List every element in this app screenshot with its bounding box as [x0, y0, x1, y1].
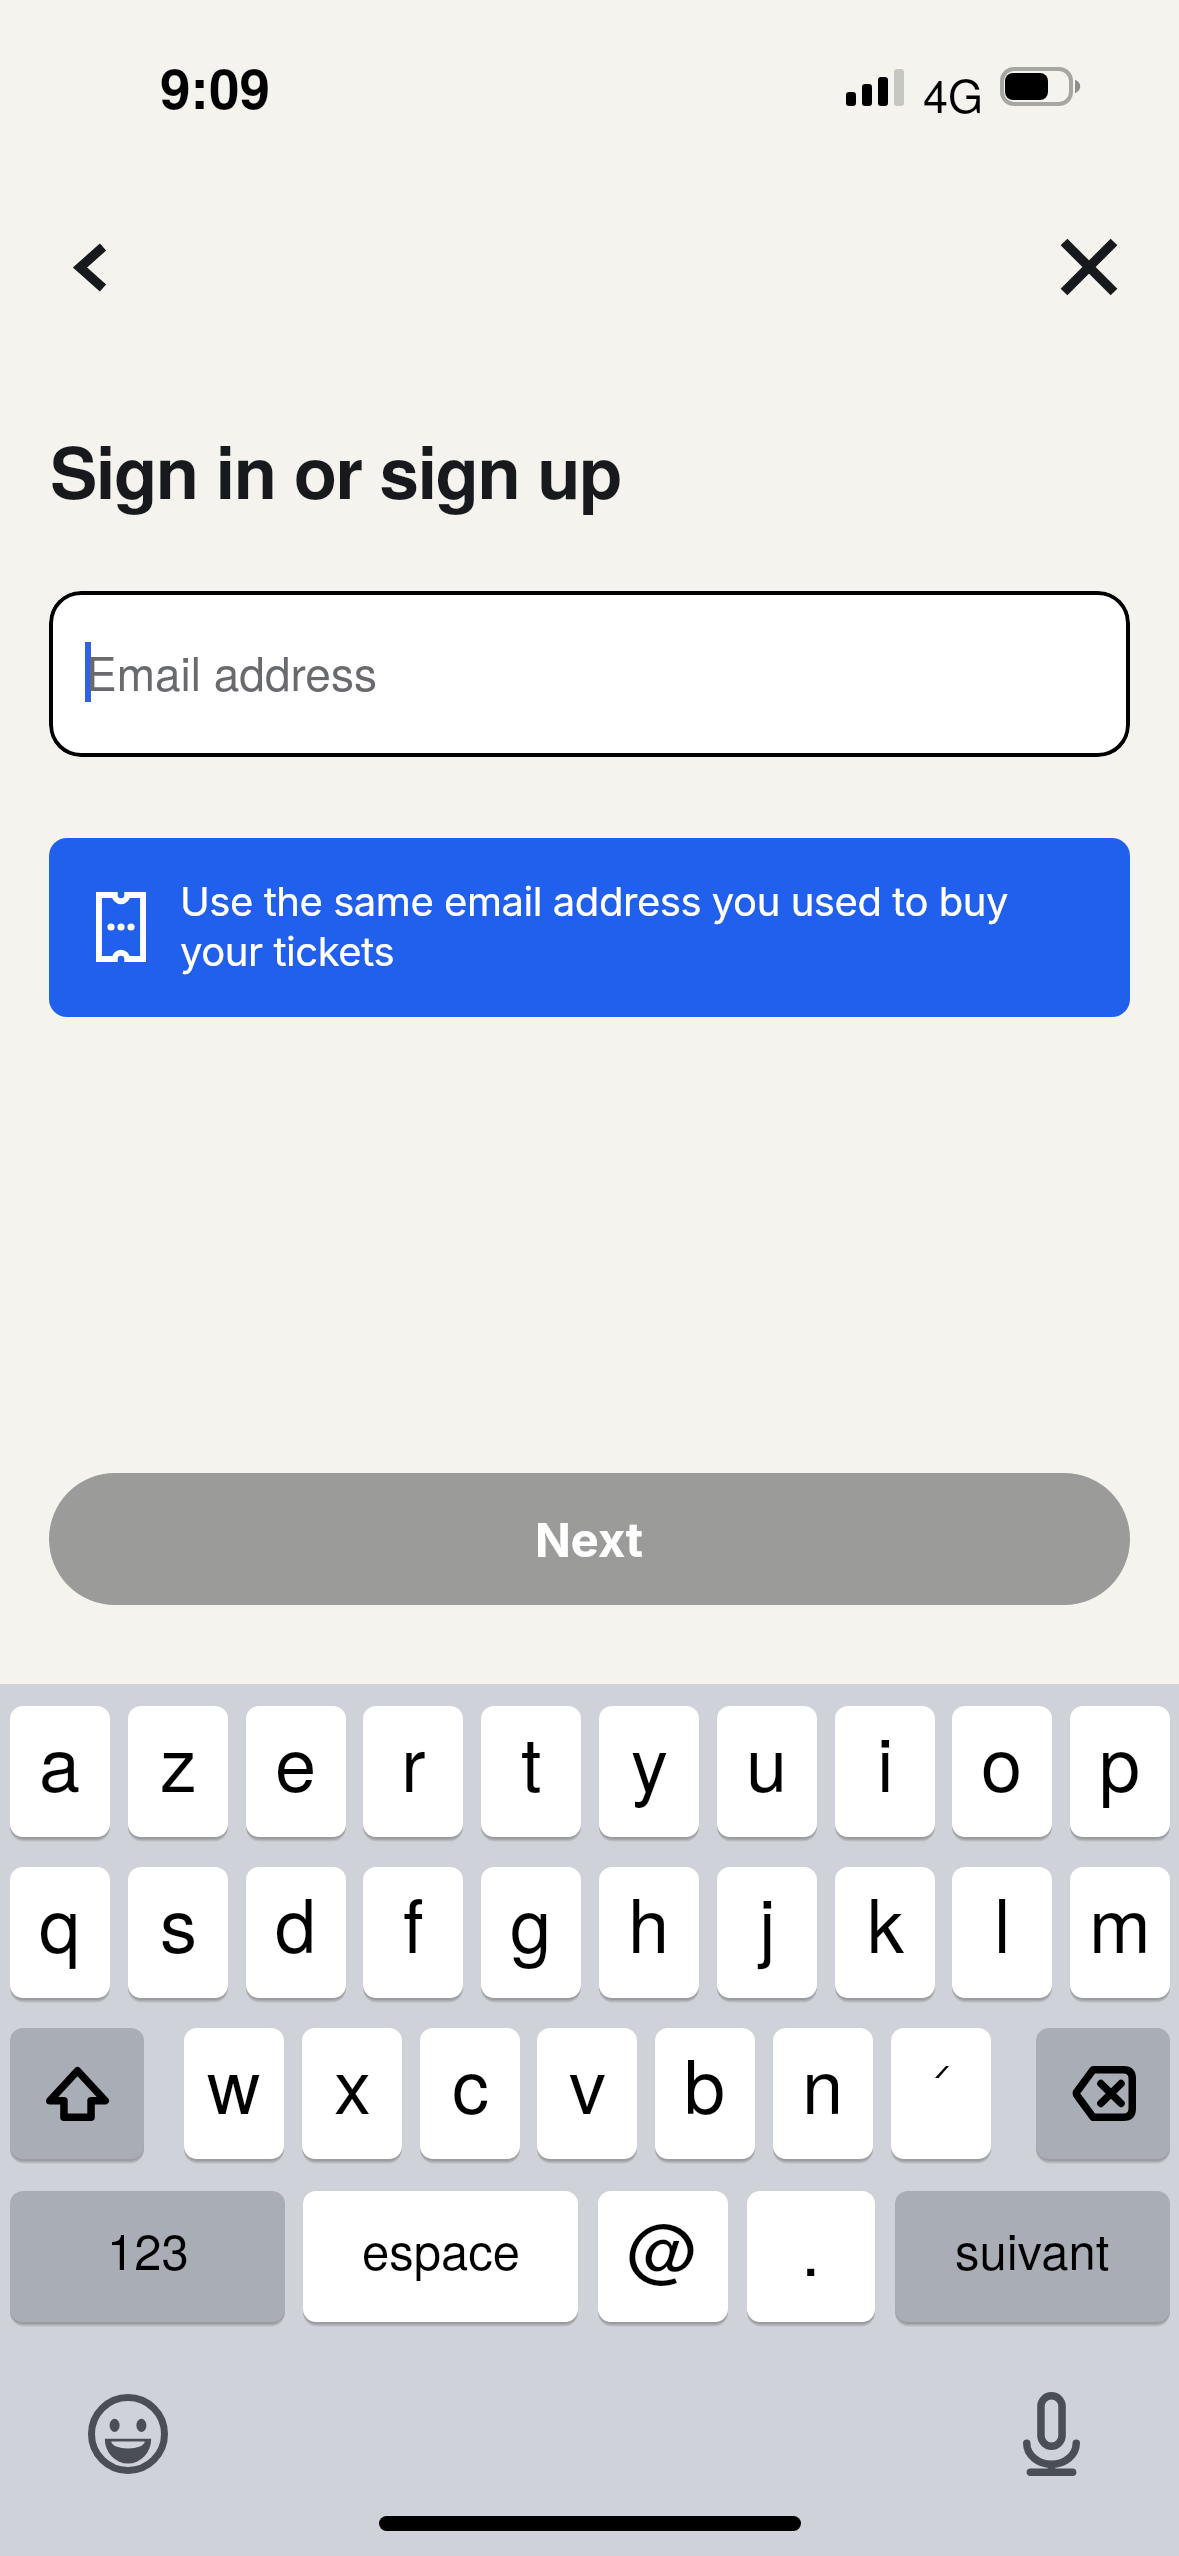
button[interactable]: Back	[43, 217, 139, 317]
staticText: d	[275, 1868, 317, 1974]
button[interactable]: u	[717, 1706, 817, 1837]
button[interactable]: r	[363, 1706, 463, 1837]
staticText: x	[334, 2029, 371, 2135]
button[interactable]: o	[952, 1706, 1052, 1837]
staticText: suivant	[955, 2214, 1110, 2284]
staticText: l	[994, 1868, 1011, 1974]
staticText: q	[39, 1868, 81, 1974]
button[interactable]: s	[128, 1867, 228, 1998]
staticText: 4G	[923, 61, 984, 125]
button[interactable]: suivant	[895, 2191, 1170, 2322]
button[interactable]: espace	[303, 2191, 578, 2322]
staticText: Email address	[86, 638, 377, 704]
staticText: u	[746, 1707, 788, 1813]
button[interactable]: Voice input	[1011, 2384, 1091, 2484]
button[interactable]: z	[128, 1706, 228, 1837]
staticText: w	[207, 2029, 261, 2135]
staticText: .	[801, 2196, 821, 2296]
button[interactable]: m	[1070, 1867, 1170, 1998]
button[interactable]: .	[747, 2191, 875, 2322]
staticText: j	[759, 1868, 776, 1974]
staticText: p	[1099, 1707, 1141, 1813]
staticText: o	[981, 1707, 1023, 1813]
button[interactable]: v	[537, 2028, 637, 2159]
button[interactable]: a	[10, 1706, 110, 1837]
staticText: g	[510, 1868, 552, 1974]
button[interactable]: h	[599, 1867, 699, 1998]
staticText: b	[684, 2029, 726, 2135]
button[interactable]: c	[420, 2028, 520, 2159]
staticText: m	[1089, 1868, 1151, 1974]
staticText: y	[631, 1707, 668, 1813]
button[interactable]: y	[599, 1706, 699, 1837]
button[interactable]: j	[717, 1867, 817, 1998]
staticText: i	[877, 1707, 894, 1813]
staticText: v	[569, 2029, 606, 2135]
staticText: h	[628, 1868, 670, 1974]
button[interactable]: l	[952, 1867, 1052, 1998]
button[interactable]: Use the same email address you used to b…	[49, 838, 1130, 1017]
button[interactable]: n	[773, 2028, 873, 2159]
staticText: n	[802, 2029, 844, 2135]
staticText: 9:09	[160, 47, 271, 126]
button[interactable]: Next	[49, 1473, 1130, 1605]
button[interactable]: q	[10, 1867, 110, 1998]
staticText: t	[521, 1707, 542, 1813]
staticText: @	[627, 2196, 699, 2296]
staticText: r	[401, 1707, 426, 1813]
staticText: espace	[362, 2214, 520, 2284]
button[interactable]: Close	[1041, 215, 1137, 319]
button[interactable]: e	[246, 1706, 346, 1837]
button[interactable]: k	[835, 1867, 935, 1998]
button[interactable]: b	[655, 2028, 755, 2159]
button[interactable]: Email address	[49, 591, 1130, 757]
button[interactable]: Acute accent	[891, 2028, 991, 2159]
button[interactable]: d	[246, 1867, 346, 1998]
staticText: f	[403, 1868, 424, 1974]
button[interactable]: p	[1070, 1706, 1170, 1837]
staticText: z	[160, 1707, 197, 1813]
staticText: a	[39, 1707, 81, 1813]
button[interactable]: t	[481, 1706, 581, 1837]
button[interactable]: Shift	[10, 2028, 144, 2159]
staticText: k	[867, 1868, 904, 1974]
button[interactable]: f	[363, 1867, 463, 1998]
staticText: e	[275, 1707, 317, 1813]
button[interactable]: i	[835, 1706, 935, 1837]
button[interactable]: 123	[10, 2191, 285, 2322]
staticText: c	[452, 2029, 489, 2135]
button[interactable]: @	[598, 2191, 728, 2322]
button[interactable]: x	[302, 2028, 402, 2159]
button[interactable]: Emoji keyboard	[88, 2394, 168, 2474]
button[interactable]: g	[481, 1867, 581, 1998]
staticText: Sign in or sign up	[50, 419, 621, 521]
staticText: Use the same email address you used to b…	[180, 877, 1085, 976]
staticText: 123	[107, 2214, 189, 2284]
button[interactable]: w	[184, 2028, 284, 2159]
staticText: s	[160, 1868, 197, 1974]
button[interactable]: Backspace	[1036, 2028, 1170, 2159]
staticText: Next	[535, 1511, 644, 1568]
